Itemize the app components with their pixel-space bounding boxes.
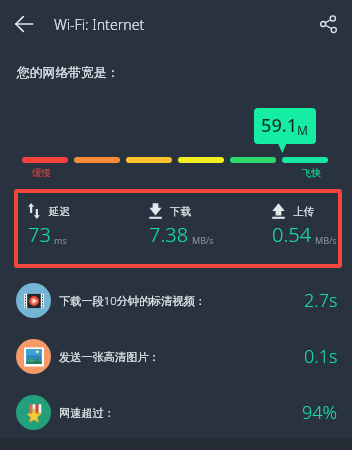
button[interactable]: Share [304, 0, 352, 48]
staticText: 73 [28, 221, 51, 248]
staticText: 延迟 [49, 205, 70, 218]
staticText: 上传 [293, 205, 314, 218]
staticText: 59.1 [261, 113, 298, 138]
staticText: MB/s [192, 234, 214, 246]
button[interactable]: 网速超过： [0, 385, 352, 440]
staticText: 下载一段10分钟的标清视频： [59, 293, 207, 308]
button[interactable]: 下载一段10分钟的标清视频： [0, 273, 352, 328]
staticText: 发送一张高清图片： [59, 350, 160, 364]
staticText: 2.7s [304, 288, 338, 313]
staticText: 网速超过： [59, 406, 115, 420]
staticText: 7.38 [149, 221, 189, 248]
staticText: ms [54, 234, 67, 246]
staticText: 0.54 [272, 221, 312, 248]
staticText: 您的网络带宽是： [17, 65, 120, 81]
staticText: Wi-Fi: Internet [54, 15, 145, 34]
staticText: M [297, 122, 309, 138]
button[interactable]: Back [0, 0, 48, 48]
staticText: 飞快 [302, 167, 321, 179]
staticText: 94% [302, 400, 338, 425]
staticText: MB/s [315, 234, 337, 246]
staticText: 0.1s [304, 344, 338, 369]
button[interactable]: 发送一张高清图片： [0, 329, 352, 384]
staticText: 下载 [170, 205, 191, 218]
staticText: 缓慢 [32, 167, 51, 179]
